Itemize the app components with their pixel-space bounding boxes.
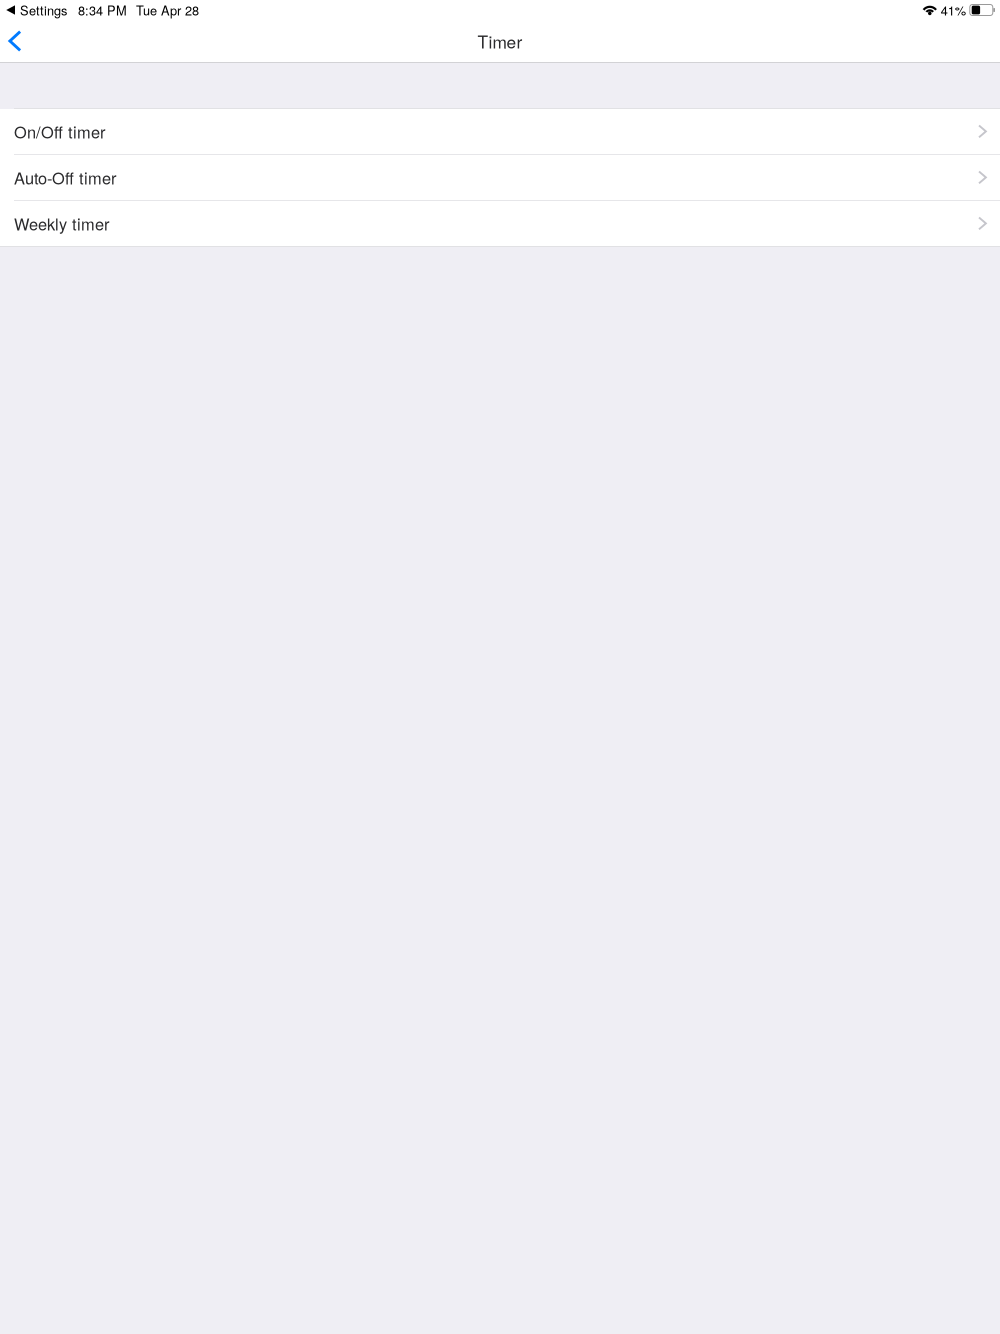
button[interactable]: Auto-Off timer <box>0 155 1000 200</box>
staticText: Settings <box>20 1 67 19</box>
button[interactable]: On/Off timer <box>0 109 1000 154</box>
button[interactable]: Weekly timer <box>0 201 1000 246</box>
button[interactable]: Back <box>0 20 26 62</box>
staticText: Timer <box>477 29 522 53</box>
staticText: On/Off timer <box>14 120 105 143</box>
staticText: 41% <box>941 1 966 19</box>
staticText: Auto-Off timer <box>14 166 116 189</box>
staticText: Tue Apr 28 <box>136 1 199 19</box>
staticText: 8:34 PM <box>78 1 127 19</box>
staticText: Weekly timer <box>14 212 109 235</box>
